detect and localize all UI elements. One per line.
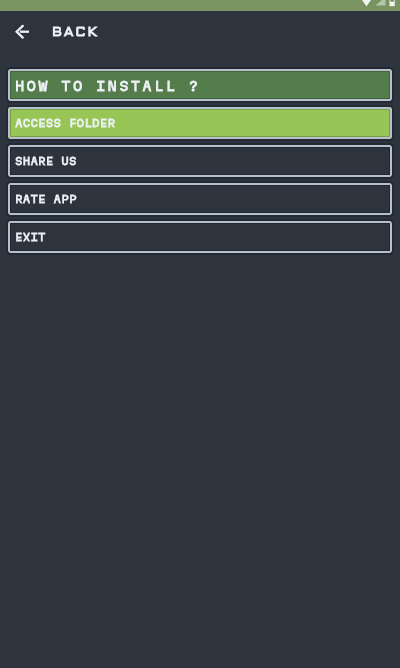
button[interactable]: Back [8,18,36,46]
staticText: ACCESS FOLDER [15,117,116,129]
button[interactable]: EXIT [10,223,390,251]
button[interactable]: RATE APP [10,185,390,213]
button[interactable]: HOW TO INSTALL ? [10,71,390,99]
staticText: SHARE US [15,155,77,167]
button[interactable]: SHARE US [10,147,390,175]
staticText: HOW TO INSTALL ? [15,78,201,93]
staticText: EXIT [15,231,46,243]
staticText: BACK [52,26,99,39]
button[interactable]: ACCESS FOLDER [10,109,390,137]
staticText: RATE APP [15,193,77,205]
